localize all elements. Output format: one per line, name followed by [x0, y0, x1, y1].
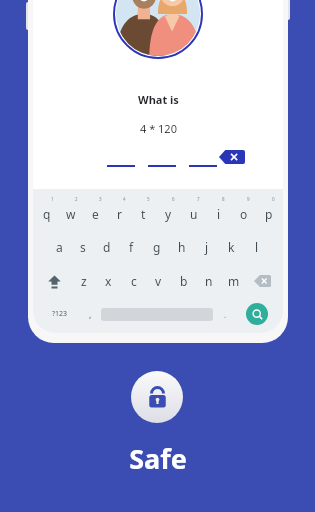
staticText: j — [205, 239, 209, 255]
button[interactable]: 1 — [35, 195, 59, 229]
staticText: o — [240, 206, 248, 222]
staticText: 3 — [99, 196, 102, 202]
staticText: 1 — [51, 196, 54, 202]
staticText: v — [155, 273, 162, 289]
button[interactable]: m — [221, 265, 246, 297]
staticText: s — [80, 239, 86, 255]
button[interactable]: 5 — [131, 195, 156, 229]
button[interactable]: Search — [237, 299, 277, 329]
staticText: t — [141, 206, 146, 222]
staticText: Safe — [129, 440, 187, 477]
button[interactable]: , — [80, 299, 101, 329]
staticText: d — [103, 239, 111, 255]
staticText: i — [217, 206, 221, 222]
staticText: m — [228, 273, 240, 289]
staticText: ?123 — [52, 309, 68, 319]
staticText: 0 — [272, 196, 275, 202]
button[interactable]: z — [71, 265, 96, 297]
button[interactable]: 9 — [231, 195, 256, 229]
button[interactable]: Safe — [131, 371, 183, 423]
staticText: n — [205, 273, 213, 289]
staticText: l — [255, 239, 259, 255]
staticText: 8 — [222, 196, 225, 202]
button[interactable]: x — [96, 265, 121, 297]
staticText: h — [178, 239, 186, 255]
staticText: k — [228, 239, 235, 255]
button[interactable]: 2 — [59, 195, 83, 229]
staticText: f — [129, 239, 134, 255]
staticText: . — [224, 309, 227, 320]
staticText: 9 — [247, 196, 250, 202]
button[interactable]: k — [219, 231, 244, 263]
button[interactable]: Delete — [246, 265, 279, 297]
button[interactable]: s — [71, 231, 95, 263]
button[interactable]: h — [169, 231, 194, 263]
button[interactable]: a — [47, 231, 71, 263]
staticText: 4 * 120 — [140, 121, 177, 136]
staticText: a — [56, 239, 63, 255]
staticText: x — [105, 273, 112, 289]
staticText: b — [180, 273, 188, 289]
staticText: g — [153, 239, 161, 255]
button[interactable]: 8 — [206, 195, 231, 229]
button[interactable]: j — [194, 231, 219, 263]
staticText: w — [66, 206, 76, 222]
staticText: u — [190, 206, 198, 222]
button[interactable]: g — [144, 231, 169, 263]
staticText: 7 — [197, 196, 200, 202]
button[interactable]: l — [244, 231, 269, 263]
button[interactable]: 3 — [83, 195, 107, 229]
button[interactable]: Shift — [37, 265, 71, 297]
staticText: p — [265, 206, 273, 222]
staticText: c — [131, 273, 137, 289]
button[interactable]: 7 — [181, 195, 206, 229]
button[interactable]: 0 — [256, 195, 281, 229]
button[interactable]: d — [95, 231, 119, 263]
staticText: , — [89, 308, 92, 320]
button[interactable]: b — [171, 265, 196, 297]
staticText: q — [43, 206, 51, 222]
button[interactable]: c — [121, 265, 146, 297]
button[interactable]: 4 — [107, 195, 131, 229]
staticText: y — [165, 206, 172, 222]
staticText: z — [81, 273, 87, 289]
button[interactable]: n — [196, 265, 221, 297]
button[interactable]: v — [146, 265, 171, 297]
button[interactable]: 6 — [156, 195, 181, 229]
staticText: 5 — [147, 196, 150, 202]
button[interactable]: Backspace — [219, 150, 245, 164]
staticText: 4 — [123, 196, 126, 202]
button[interactable]: ?123 — [39, 299, 80, 329]
button[interactable]: f — [119, 231, 144, 263]
staticText: What is — [138, 92, 179, 107]
staticText: e — [92, 206, 99, 222]
staticText: r — [117, 206, 122, 222]
staticText: 2 — [75, 196, 78, 202]
staticText: 6 — [172, 196, 175, 202]
